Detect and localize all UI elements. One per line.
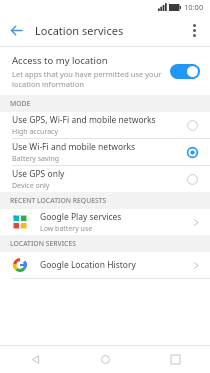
button[interactable]: Access to my location bbox=[0, 47, 210, 95]
staticText: Device only bbox=[12, 181, 50, 191]
staticText: Let apps that you have permitted use you… bbox=[12, 69, 162, 89]
button[interactable]: Recents bbox=[140, 346, 210, 373]
staticText: MODE bbox=[10, 99, 31, 108]
staticText: Low battery use bbox=[40, 224, 93, 234]
button[interactable]: Google Play services bbox=[0, 209, 210, 235]
staticText: Use GPS, Wi-Fi and mobile networks bbox=[12, 114, 156, 126]
staticText: Google Location History bbox=[40, 259, 136, 271]
staticText: Location services bbox=[35, 23, 124, 38]
button[interactable]: Use Wi-Fi and mobile networks bbox=[0, 139, 210, 165]
button[interactable]: More options bbox=[178, 14, 210, 46]
button[interactable]: Google Location History bbox=[0, 252, 210, 278]
staticText: Use Wi-Fi and mobile networks bbox=[12, 141, 136, 153]
staticText: 10:00 bbox=[184, 2, 204, 12]
button[interactable]: Back bbox=[0, 14, 32, 46]
staticText: Access to my location bbox=[12, 54, 108, 67]
button[interactable]: Back bbox=[0, 346, 70, 373]
button[interactable]: Use GPS, Wi-Fi and mobile networks bbox=[0, 112, 210, 138]
staticText: High accuracy bbox=[12, 127, 59, 137]
staticText: Battery saving bbox=[12, 154, 60, 164]
staticText: LOCATION SERVICES bbox=[10, 239, 76, 248]
staticText: Use GPS only bbox=[12, 168, 65, 180]
button[interactable]: Use GPS only bbox=[0, 166, 210, 192]
staticText: RECENT LOCATION REQUESTS bbox=[10, 196, 107, 205]
button[interactable]: Access to my location toggle bbox=[170, 64, 200, 79]
button[interactable]: Home bbox=[70, 346, 140, 373]
staticText: Google Play services bbox=[40, 211, 122, 223]
